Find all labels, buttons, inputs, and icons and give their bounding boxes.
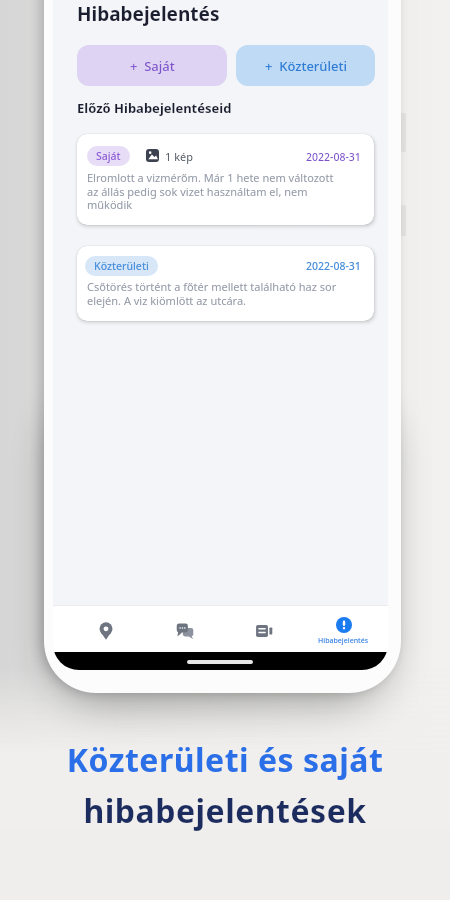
staticText: + Saját: [130, 57, 175, 75]
staticText: 2022-08-31: [306, 259, 361, 273]
staticText: 1 kép: [165, 149, 193, 164]
staticText: Saját: [96, 149, 121, 163]
staticText: + Közterületi: [265, 57, 347, 75]
staticText: Hibabejelentés: [77, 1, 220, 27]
staticText: Elromlott a vizmérőm. Már 1 hete nem vál…: [87, 170, 334, 212]
staticText: Közterületi: [94, 259, 149, 273]
button[interactable]: [90, 615, 122, 647]
staticText: Előző Hibabejelentéseid: [77, 99, 232, 117]
button[interactable]: Saját: [77, 134, 374, 225]
staticText: Hibabejelentés: [318, 636, 369, 646]
button[interactable]: Hibabejelentés: [315, 617, 372, 651]
staticText: Közterületi és saját: [0, 738, 450, 782]
button[interactable]: [169, 615, 201, 647]
staticText: Csőtörés történt a főtér mellett találha…: [87, 279, 337, 308]
button[interactable]: + Saját: [77, 45, 227, 86]
button[interactable]: [248, 615, 280, 647]
staticText: 2022-08-31: [306, 150, 361, 164]
button[interactable]: + Közterületi: [236, 45, 375, 86]
staticText: hibabejelentések: [0, 789, 450, 833]
button[interactable]: Közterületi: [77, 246, 374, 321]
